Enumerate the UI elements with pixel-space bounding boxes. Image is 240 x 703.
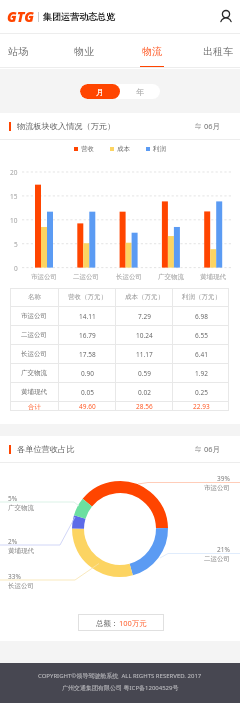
button[interactable]: 月 <box>80 84 120 99</box>
staticText: 站场 <box>8 45 28 58</box>
staticText: 49.60 <box>79 402 96 411</box>
staticText: 5 <box>14 240 18 248</box>
staticText: GTG <box>7 7 34 26</box>
staticText: 33% <box>8 572 21 580</box>
staticText: 总额： <box>96 619 119 628</box>
staticText: 0 <box>14 264 18 272</box>
staticText: 二运公司 <box>21 331 47 339</box>
staticText: 2% <box>8 537 18 545</box>
staticText: 6.55 <box>195 331 208 340</box>
button[interactable]: 物业 <box>69 34 99 68</box>
staticText: 黄埔现代 <box>21 388 47 396</box>
staticText: 22.93 <box>193 402 210 411</box>
staticText: 广州交通集团有限公司 粤ICP备12004529号 <box>62 684 179 692</box>
staticText: 物流 <box>142 45 162 58</box>
staticText: 广交物流 <box>8 504 34 512</box>
staticText: 年 <box>136 87 144 97</box>
staticText: 0.25 <box>195 388 208 397</box>
staticText: 二运公司 <box>204 555 230 563</box>
staticText: 成本 <box>117 145 130 153</box>
staticText: 集团运营动态总览 <box>43 11 115 22</box>
staticText: 6.98 <box>195 312 208 321</box>
staticText: 黄埔现代 <box>8 547 34 555</box>
button[interactable]: 物流 <box>137 34 167 68</box>
staticText: 06月 <box>204 121 221 131</box>
staticText: 20 <box>10 168 18 176</box>
staticText: 合计 <box>28 403 41 411</box>
staticText: 营收（万元） <box>68 293 107 301</box>
staticText: 各单位营收占比 <box>17 444 75 454</box>
staticText: 0.02 <box>138 388 151 397</box>
staticText: 15 <box>10 192 18 200</box>
staticText: 长运公司 <box>8 582 34 590</box>
staticText: 100万元 <box>119 618 147 628</box>
staticText: 10 <box>10 216 18 224</box>
staticText: 月 <box>96 87 104 97</box>
staticText: 21% <box>217 545 230 553</box>
button[interactable]: 年 <box>120 84 160 99</box>
staticText: 6.41 <box>195 350 208 359</box>
staticText: 39% <box>217 474 230 482</box>
staticText: 市运公司 <box>31 273 57 281</box>
staticText: 14.11 <box>79 312 96 321</box>
staticText: 广交物流 <box>21 369 47 377</box>
button[interactable]: Change month <box>195 121 221 131</box>
staticText: COPYRIGHT©领导驾驶舱系统 ALL RIGHTS RESERVED. 2… <box>38 672 202 680</box>
staticText: 11.17 <box>136 350 153 359</box>
staticText: 市运公司 <box>204 484 230 492</box>
button[interactable]: Change month <box>195 444 221 454</box>
staticText: 利润 <box>153 145 166 153</box>
staticText: 市运公司 <box>21 312 47 320</box>
staticText: 名称 <box>28 293 41 301</box>
staticText: 长运公司 <box>116 273 142 281</box>
staticText: 利润（万元） <box>182 293 221 301</box>
staticText: 7.29 <box>138 312 151 321</box>
staticText: 二运公司 <box>73 273 99 281</box>
button[interactable]: 站场 <box>3 34 33 68</box>
staticText: 06月 <box>204 444 221 454</box>
staticText: 黄埔现代 <box>200 273 226 281</box>
staticText: 物流板块收入情况（万元） <box>17 121 116 131</box>
staticText: 营收 <box>81 145 94 153</box>
staticText: 5% <box>8 494 18 502</box>
staticText: 长运公司 <box>21 350 47 358</box>
staticText: 28.56 <box>136 402 153 411</box>
staticText: 出租车 <box>203 45 233 58</box>
staticText: 16.79 <box>79 331 96 340</box>
button[interactable]: 出租车 <box>198 34 238 68</box>
staticText: 0.59 <box>138 369 151 378</box>
staticText: 1.92 <box>195 369 208 378</box>
staticText: 成本（万元） <box>125 293 164 301</box>
staticText: 0.05 <box>81 388 94 397</box>
staticText: 广交物流 <box>158 273 184 281</box>
staticText: 物业 <box>74 45 94 58</box>
button[interactable]: User account <box>215 6 237 28</box>
button[interactable]: 总额： <box>78 614 164 631</box>
staticText: 10.24 <box>136 331 153 340</box>
staticText: 17.58 <box>79 350 96 359</box>
staticText: 0.90 <box>81 369 94 378</box>
